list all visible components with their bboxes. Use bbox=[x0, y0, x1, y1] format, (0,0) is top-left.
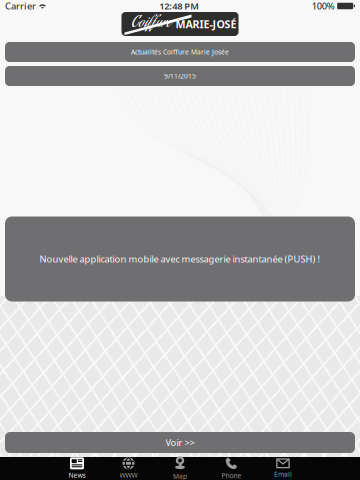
staticText: MARIE-JOSÉ bbox=[175, 17, 236, 31]
staticText: WWW bbox=[119, 471, 137, 480]
staticText: News bbox=[68, 471, 85, 480]
button[interactable]: Email bbox=[257, 457, 309, 480]
staticText: Phone bbox=[221, 471, 241, 480]
button[interactable]: Actualités Coiffure Marie Josée bbox=[5, 42, 355, 62]
staticText: 12:48 PM bbox=[159, 0, 199, 12]
button[interactable]: Voir >> bbox=[5, 432, 355, 453]
staticText: Voir >> bbox=[165, 436, 194, 449]
staticText: Email bbox=[274, 470, 292, 479]
button[interactable]: Map bbox=[154, 457, 206, 480]
staticText: Coiffure bbox=[131, 12, 171, 36]
button[interactable]: 9/11/2015 bbox=[5, 66, 355, 86]
staticText: 100% bbox=[312, 0, 335, 12]
staticText: Actualités Coiffure Marie Josée bbox=[131, 48, 229, 56]
staticText: Carrier bbox=[5, 0, 36, 12]
staticText: Map bbox=[173, 472, 187, 480]
button[interactable]: Phone bbox=[206, 457, 257, 480]
staticText: Nouvelle application mobile avec message… bbox=[39, 253, 320, 265]
button[interactable]: News bbox=[51, 457, 103, 480]
staticText: 9/11/2015 bbox=[164, 72, 196, 80]
button[interactable]: WWW bbox=[103, 457, 154, 480]
button[interactable]: Nouvelle application mobile avec message… bbox=[0, 216, 360, 301]
